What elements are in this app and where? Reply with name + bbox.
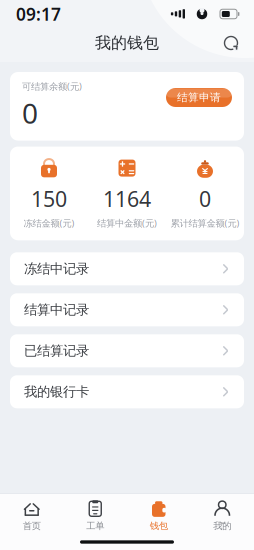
staticText: 我的钱包 xyxy=(95,33,159,53)
staticText: 工单 xyxy=(86,520,104,532)
button[interactable]: 我的银行卡 xyxy=(10,375,244,408)
staticText: 冻结中记录 xyxy=(24,261,89,277)
staticText: 结算中金额(元) xyxy=(97,217,157,229)
button[interactable]: 结算申请 xyxy=(166,88,232,107)
button[interactable]: 已结算记录 xyxy=(10,334,244,367)
button[interactable]: 我的 xyxy=(190,494,254,534)
staticText: 我的银行卡 xyxy=(24,384,89,400)
button[interactable]: 钱包 xyxy=(127,494,190,534)
staticText: 结算中记录 xyxy=(24,302,89,318)
staticText: 我的 xyxy=(213,520,231,532)
staticText: 09:17 xyxy=(16,2,61,25)
staticText: 钱包 xyxy=(150,520,168,532)
staticText: 已结算记录 xyxy=(24,343,89,359)
button[interactable]: Refresh xyxy=(222,34,254,52)
staticText: 1164 xyxy=(103,185,151,213)
button[interactable]: 结算中记录 xyxy=(10,293,244,326)
staticText: 可结算余额(元) xyxy=(22,80,82,92)
button[interactable]: 冻结中记录 xyxy=(10,252,244,285)
staticText: 冻结金额(元) xyxy=(23,217,74,229)
button[interactable]: 首页 xyxy=(0,494,63,534)
staticText: 结算申请 xyxy=(177,91,221,104)
staticText: 首页 xyxy=(23,520,41,532)
staticText: 累计结算金额(元) xyxy=(170,217,239,229)
button[interactable]: 工单 xyxy=(63,494,127,534)
staticText: 150 xyxy=(31,185,67,213)
staticText: 0 xyxy=(199,185,211,213)
staticText: 0 xyxy=(22,94,38,132)
